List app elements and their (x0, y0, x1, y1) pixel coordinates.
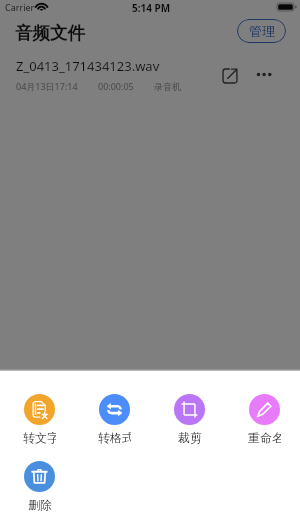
button[interactable]: Share (218, 64, 242, 88)
staticText: 5:14 PM (132, 1, 171, 15)
staticText: Carrier (5, 1, 35, 13)
staticText: Z_0413_171434123.wav (16, 57, 160, 75)
staticText: 00:00:05 (98, 80, 134, 92)
staticText: 转格式 (98, 430, 131, 445)
staticText: 管理 (249, 23, 275, 39)
staticText: 04月13日17:14 (16, 80, 78, 92)
button[interactable]: 转文字 (23, 394, 56, 445)
button[interactable]: 裁剪 (173, 394, 206, 445)
staticText: 裁剪 (178, 430, 202, 445)
button[interactable]: More options (252, 63, 276, 87)
staticText: 重命名 (248, 430, 281, 445)
staticText: 删除 (28, 497, 52, 512)
staticText: 音频文件 (15, 22, 85, 44)
staticText: 录音机 (154, 81, 181, 92)
button[interactable]: 删除 (23, 461, 56, 512)
staticText: 转文字 (23, 430, 56, 445)
button[interactable]: 管理 (237, 19, 286, 43)
button[interactable]: 转格式 (98, 394, 131, 445)
button[interactable]: 重命名 (248, 394, 281, 445)
